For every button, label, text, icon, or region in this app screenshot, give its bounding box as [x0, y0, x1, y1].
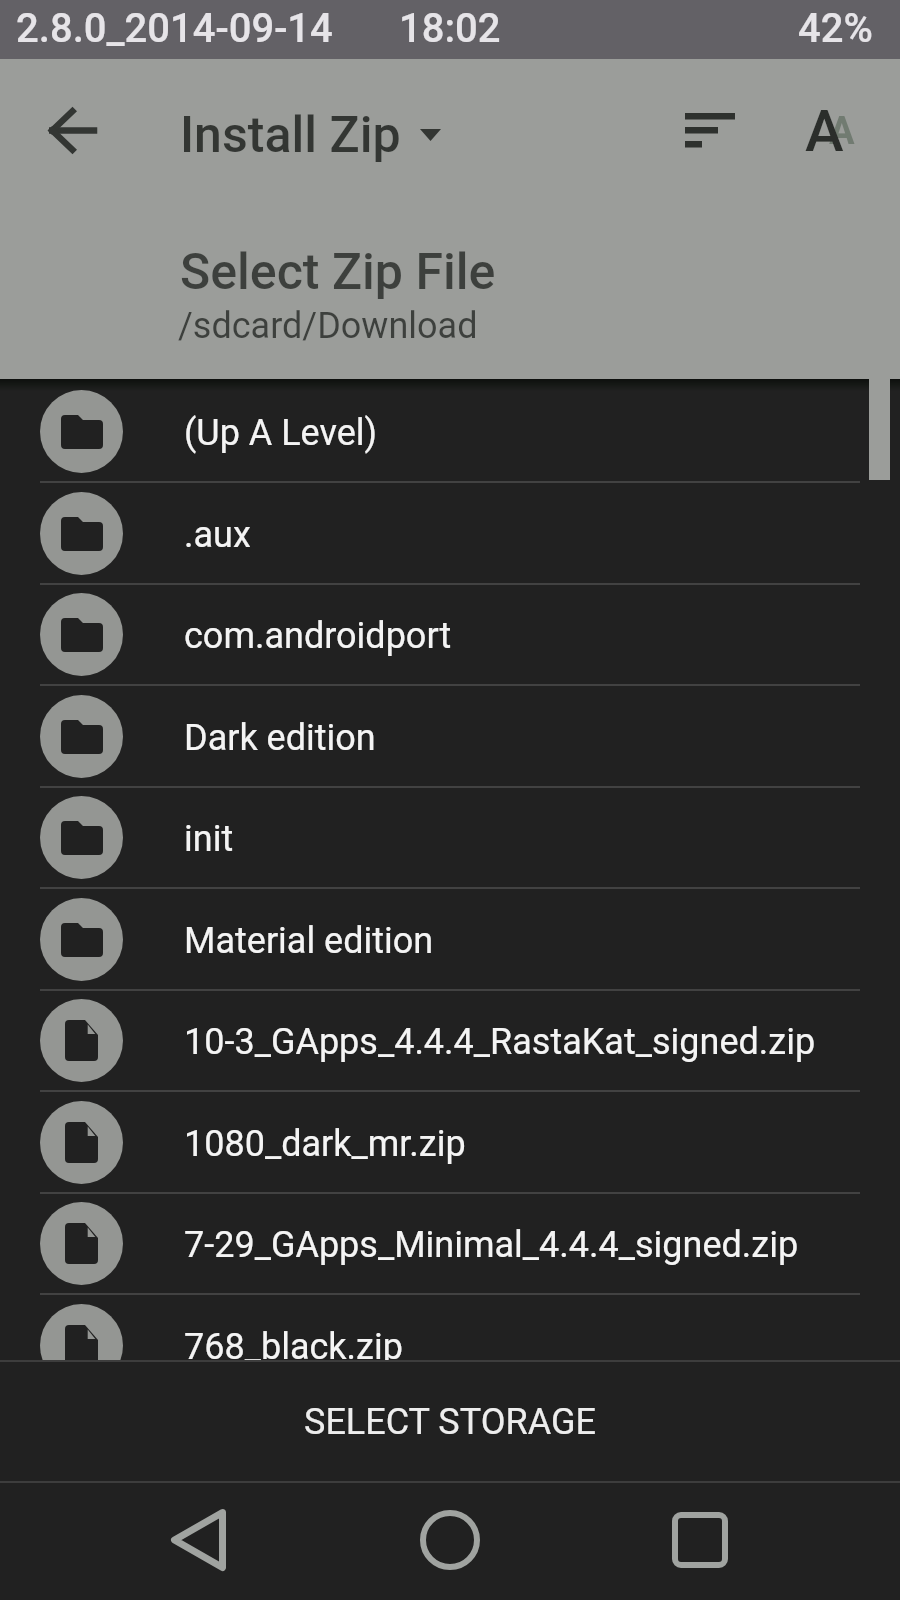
button[interactable]: com.androidport	[0, 584, 900, 686]
staticText: 42%	[798, 5, 873, 52]
button[interactable]: 1080_dark_mr.zip	[0, 1092, 900, 1194]
button[interactable]: 768_black.zip	[0, 1295, 900, 1360]
button[interactable]: Dark edition	[0, 686, 900, 788]
button[interactable]: init	[0, 787, 900, 889]
button[interactable]: Text size	[787, 89, 883, 185]
staticText: /sdcard/Download	[178, 305, 478, 347]
staticText: Select Zip File	[180, 243, 496, 302]
staticText: Install Zip	[180, 106, 401, 165]
button[interactable]: Sort order	[662, 82, 758, 178]
staticText: 2.8.0_2014-09-14	[16, 5, 333, 52]
button[interactable]: 10-3_GApps_4.4.4_RastaKat_signed.zip	[0, 990, 900, 1092]
staticText: .aux	[184, 514, 251, 556]
button[interactable]: .aux	[0, 483, 900, 585]
staticText: 1080_dark_mr.zip	[184, 1123, 466, 1165]
staticText: 10-3_GApps_4.4.4_RastaKat_signed.zip	[184, 1021, 816, 1063]
staticText: init	[184, 818, 234, 860]
staticText: Material edition	[184, 920, 434, 962]
button[interactable]: Material edition	[0, 889, 900, 991]
button[interactable]: Navigate up	[23, 82, 119, 178]
button[interactable]: Back	[141, 1508, 256, 1572]
button[interactable]: Recent apps	[642, 1508, 757, 1572]
staticText: A	[829, 109, 855, 154]
button[interactable]: SELECT STORAGE	[0, 1362, 900, 1481]
staticText: 768_black.zip	[184, 1326, 403, 1360]
staticText: (Up A Level)	[184, 412, 378, 454]
staticText: SELECT STORAGE	[304, 1401, 596, 1443]
button[interactable]: Install Zip	[170, 79, 460, 181]
button[interactable]: (Up A Level)	[0, 381, 900, 483]
button[interactable]: Home	[392, 1508, 507, 1572]
staticText: 18:02	[399, 5, 501, 52]
button[interactable]: 7-29_GApps_Minimal_4.4.4_signed.zip	[0, 1193, 900, 1295]
staticText: A	[805, 97, 844, 165]
staticText: 7-29_GApps_Minimal_4.4.4_signed.zip	[184, 1224, 799, 1266]
staticText: com.androidport	[184, 615, 452, 657]
staticText: Dark edition	[184, 717, 376, 759]
